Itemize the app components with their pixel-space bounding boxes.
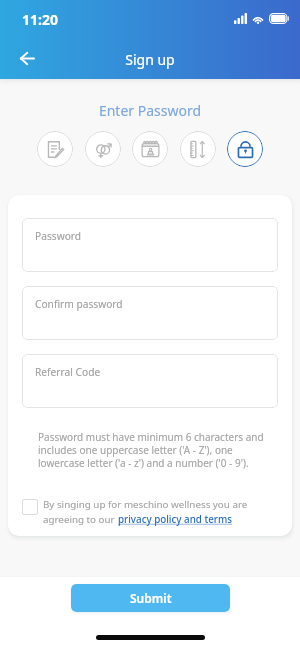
staticText: Sign up	[0, 50, 300, 69]
button[interactable]: Back	[11, 42, 43, 74]
staticText: Password	[35, 229, 82, 243]
button[interactable]: Birthday step	[132, 131, 168, 167]
button[interactable]: Measurements step	[180, 131, 216, 167]
button[interactable]: Password step	[227, 131, 263, 167]
button[interactable]: Gender step	[85, 131, 121, 167]
button[interactable]: By singing up for meschino wellness you …	[22, 498, 278, 526]
button[interactable]: Referral Code	[22, 354, 278, 408]
staticText: Confirm password	[35, 297, 123, 311]
staticText: Submit	[130, 590, 172, 606]
button[interactable]: Confirm password	[22, 286, 278, 340]
staticText: Referral Code	[35, 365, 101, 379]
staticText: By singing up for meschino wellness you …	[43, 498, 248, 511]
button[interactable]: Submit	[71, 584, 230, 612]
staticText: Password must have minimum 6 characters …	[38, 430, 270, 470]
staticText: Enter Password	[0, 101, 300, 120]
staticText: agreeing to our	[43, 513, 118, 526]
button[interactable]: Profile step	[37, 131, 73, 167]
staticText: privacy policy and terms	[118, 513, 232, 526]
staticText: 11:20	[22, 10, 58, 29]
button[interactable]: Password	[22, 218, 278, 272]
